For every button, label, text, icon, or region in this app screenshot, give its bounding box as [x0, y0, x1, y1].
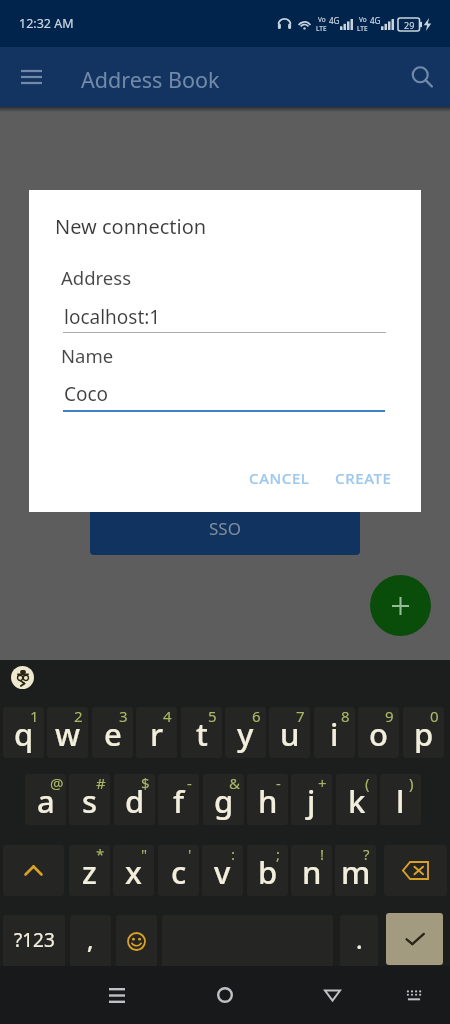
- staticText: SSO: [209, 517, 241, 540]
- button[interactable]: 1: [3, 707, 44, 758]
- staticText: p: [414, 713, 434, 755]
- staticText: ?: [363, 845, 370, 864]
- staticText: x: [125, 851, 142, 893]
- staticText: h: [258, 780, 278, 822]
- button[interactable]: Shift: [3, 845, 64, 896]
- button[interactable]: #: [69, 774, 110, 825]
- button[interactable]: Add: [370, 575, 431, 636]
- button[interactable]: $: [114, 774, 155, 825]
- staticText: 4G: [370, 15, 381, 26]
- button[interactable]: ": [113, 845, 154, 896]
- staticText: 5: [208, 707, 217, 726]
- staticText: &: [229, 774, 240, 793]
- button[interactable]: @: [25, 774, 66, 825]
- staticText: $: [141, 774, 150, 793]
- button[interactable]: 3: [92, 707, 133, 758]
- button[interactable]: -: [158, 774, 199, 825]
- button[interactable]: *: [69, 845, 110, 896]
- staticText: c: [171, 851, 187, 893]
- staticText: 7: [296, 707, 305, 726]
- staticText: Coco: [64, 381, 109, 407]
- button[interactable]: .: [340, 915, 378, 967]
- button[interactable]: ): [380, 774, 421, 825]
- staticText: g: [214, 780, 234, 822]
- staticText: ': [188, 845, 192, 864]
- button[interactable]: 0: [403, 707, 444, 758]
- staticText: :: [231, 845, 236, 864]
- staticText: 9: [385, 707, 394, 726]
- staticText: (: [365, 774, 370, 793]
- button[interactable]: +: [291, 774, 332, 825]
- staticText: b: [258, 851, 278, 893]
- staticText: k: [348, 780, 366, 822]
- button[interactable]: Search: [402, 57, 442, 97]
- staticText: 4: [163, 707, 172, 726]
- button[interactable]: SSO: [90, 495, 360, 555]
- button[interactable]: 7: [269, 707, 310, 758]
- staticText: Address: [61, 265, 132, 290]
- button[interactable]: ,: [70, 915, 111, 967]
- staticText: m: [341, 851, 371, 893]
- button[interactable]: Backspace: [384, 845, 447, 896]
- staticText: New connection: [55, 213, 207, 240]
- staticText: e: [104, 713, 122, 755]
- button[interactable]: 6: [225, 707, 266, 758]
- staticText: CREATE: [335, 468, 392, 488]
- staticText: @: [50, 774, 64, 793]
- staticText: CANCEL: [249, 468, 310, 488]
- staticText: v: [214, 851, 231, 893]
- staticText: ): [409, 774, 414, 793]
- button[interactable]: -: [247, 774, 288, 825]
- staticText: 4G: [329, 15, 340, 26]
- staticText: .: [356, 923, 363, 956]
- button[interactable]: ?123: [3, 915, 65, 967]
- button[interactable]: 5: [181, 707, 222, 758]
- staticText: Address Book: [81, 65, 220, 94]
- button[interactable]: Keyboard: [396, 966, 432, 1024]
- staticText: j: [307, 780, 316, 822]
- button[interactable]: ': [158, 845, 199, 896]
- staticText: u: [280, 713, 300, 755]
- button[interactable]: !: [291, 845, 332, 896]
- button[interactable]: Enter: [386, 913, 443, 965]
- staticText: LTE: [316, 24, 327, 33]
- button[interactable]: Emoji: [116, 915, 157, 967]
- button[interactable]: Home: [207, 966, 243, 1024]
- staticText: ": [141, 845, 148, 864]
- button[interactable]: 4: [136, 707, 177, 758]
- staticText: i: [330, 713, 339, 755]
- button[interactable]: (: [336, 774, 377, 825]
- staticText: #: [96, 774, 106, 793]
- staticText: w: [55, 713, 81, 755]
- staticText: Name: [61, 343, 114, 368]
- staticText: n: [302, 851, 322, 893]
- button[interactable]: Back: [314, 966, 350, 1024]
- staticText: y: [237, 713, 254, 755]
- button[interactable]: Recents: [99, 966, 135, 1024]
- staticText: l: [396, 780, 405, 822]
- button[interactable]: 9: [358, 707, 399, 758]
- staticText: a: [37, 780, 55, 822]
- staticText: localhost:1: [64, 304, 161, 330]
- button[interactable]: CREATE: [327, 460, 399, 496]
- staticText: s: [82, 780, 98, 822]
- button[interactable]: ;: [247, 845, 288, 896]
- staticText: ;: [276, 845, 281, 864]
- staticText: ,: [87, 923, 94, 956]
- button[interactable]: 2: [47, 707, 88, 758]
- button[interactable]: &: [203, 774, 244, 825]
- staticText: -: [276, 774, 281, 793]
- staticText: 8: [341, 707, 350, 726]
- button[interactable]: Incognito mode: [11, 666, 34, 689]
- staticText: 1: [30, 707, 39, 726]
- staticText: z: [82, 851, 97, 893]
- staticText: !: [320, 845, 325, 864]
- staticText: 0: [430, 707, 439, 726]
- button[interactable]: Menu: [13, 59, 49, 95]
- button[interactable]: CANCEL: [243, 460, 315, 496]
- staticText: 3: [119, 707, 128, 726]
- button[interactable]: 8: [314, 707, 355, 758]
- button[interactable]: ?: [335, 845, 376, 896]
- button[interactable]: :: [202, 845, 243, 896]
